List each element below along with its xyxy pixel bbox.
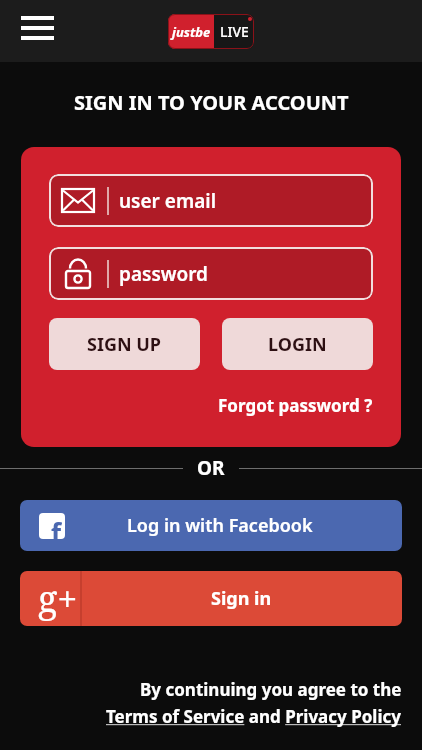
staticText: LOGIN bbox=[268, 332, 327, 357]
staticText: SIGN UP bbox=[87, 332, 162, 357]
button[interactable]: SIGN UP bbox=[49, 318, 200, 370]
staticText: g+ bbox=[38, 574, 78, 623]
staticText: LIVE bbox=[220, 22, 249, 41]
staticText: f bbox=[51, 515, 62, 539]
staticText: By continuing you agree to the bbox=[140, 678, 402, 701]
staticText: user email bbox=[119, 188, 217, 214]
button[interactable]: user email bbox=[49, 174, 373, 227]
staticText: Sign in bbox=[211, 586, 272, 611]
button[interactable]: g+ bbox=[20, 571, 402, 626]
button[interactable]: f bbox=[20, 500, 402, 551]
staticText: SIGN IN TO YOUR ACCOUNT bbox=[74, 89, 349, 116]
button[interactable] bbox=[21, 8, 54, 48]
staticText: OR bbox=[197, 455, 225, 481]
button[interactable]: Terms of Service and Privacy Policy bbox=[106, 705, 402, 728]
staticText: password bbox=[119, 261, 208, 287]
button[interactable]: LOGIN bbox=[222, 318, 373, 370]
staticText: justbe bbox=[172, 23, 211, 41]
button[interactable]: Forgot password ? bbox=[218, 394, 373, 417]
staticText: Log in with Facebook bbox=[127, 513, 313, 538]
button[interactable]: password bbox=[49, 247, 373, 300]
